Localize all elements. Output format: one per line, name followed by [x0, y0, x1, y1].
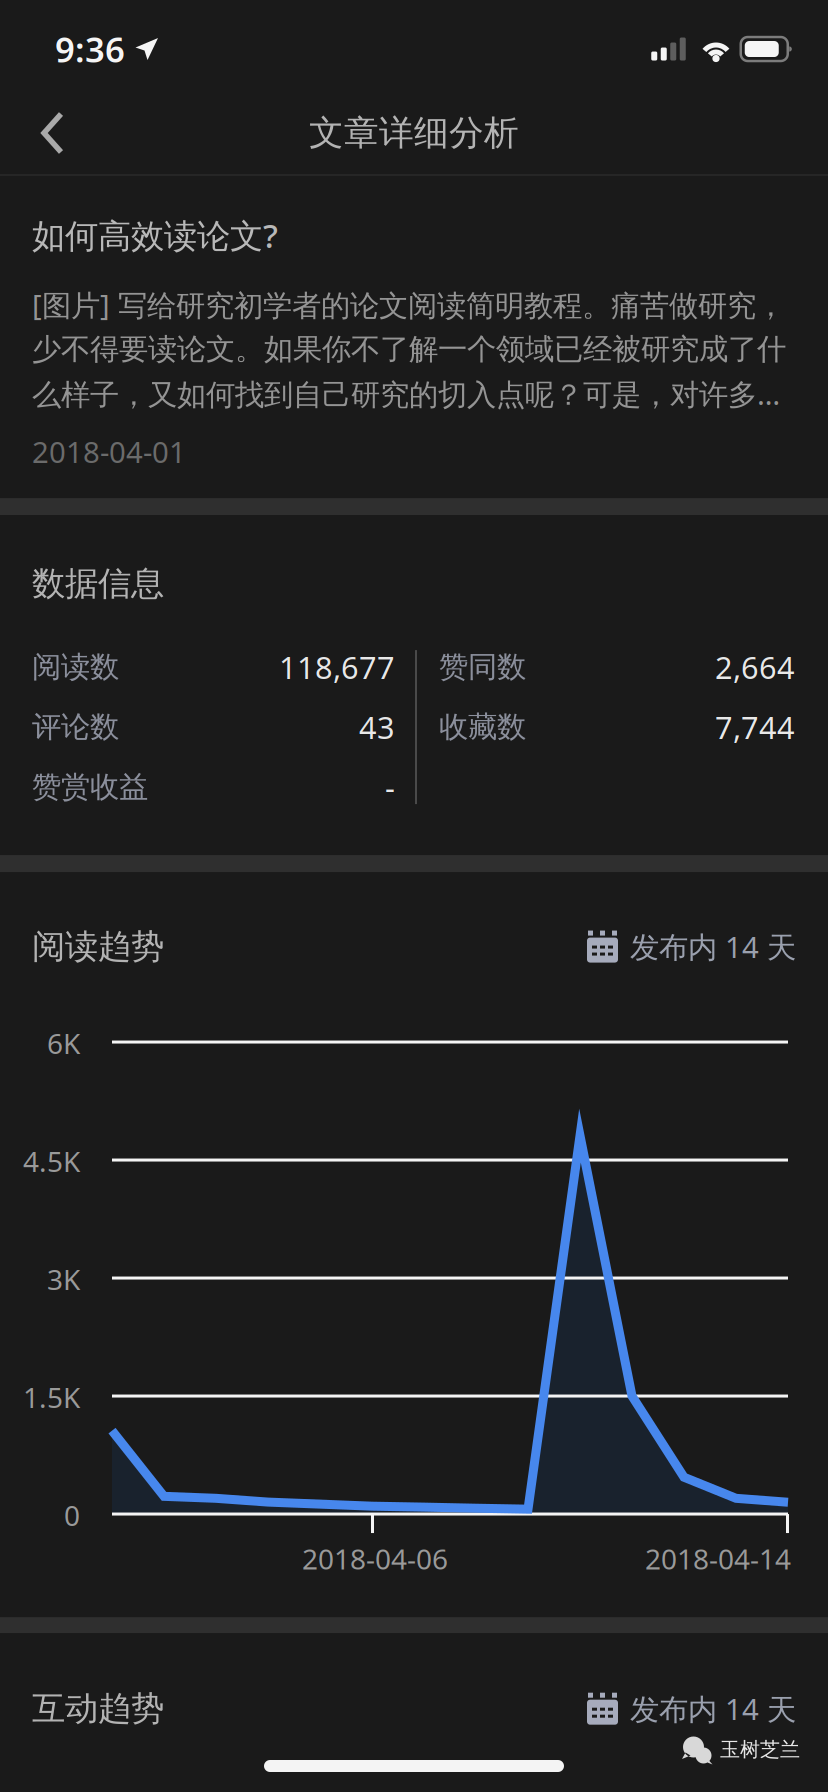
staticText: 赞同数	[439, 649, 526, 685]
staticText: 118,677	[279, 647, 395, 687]
staticText: 收藏数	[439, 709, 526, 745]
staticText: 6K	[47, 1024, 80, 1062]
staticText: 阅读趋势	[32, 926, 164, 967]
staticText: 7,744	[715, 707, 795, 747]
staticText: 9:36	[55, 26, 125, 72]
staticText: 么样子，又如何找到自己研究的切入点呢？可是，对许多…	[32, 374, 780, 413]
staticText: 互动趋势	[32, 1688, 164, 1729]
staticText: 玉树芝兰	[720, 1737, 800, 1762]
staticText: 2018-04-06	[302, 1540, 448, 1577]
staticText: 2018-04-01	[32, 432, 186, 471]
staticText: 2018-04-14	[645, 1540, 791, 1577]
staticText: 2,664	[715, 647, 795, 687]
staticText: 发布内 14 天	[630, 1689, 796, 1728]
staticText: 赞赏收益	[32, 769, 148, 805]
staticText: 3K	[47, 1260, 80, 1298]
button[interactable]: Back	[0, 88, 92, 174]
button[interactable]: 发布内 14 天	[587, 927, 796, 966]
staticText: 1.5K	[23, 1378, 80, 1416]
staticText: 少不得要读论文。如果你不了解一个领域已经被研究成了什	[32, 331, 786, 367]
staticText: 评论数	[32, 709, 119, 745]
staticText: 0	[64, 1496, 80, 1534]
staticText: [图片] 写给研究初学者的论文阅读简明教程。痛苦做研究，	[32, 285, 785, 324]
staticText: 阅读数	[32, 649, 119, 685]
staticText: 文章详细分析	[309, 112, 519, 154]
staticText: 如何高效读论文?	[32, 213, 278, 257]
staticText: 43	[359, 707, 395, 747]
staticText: 4.5K	[23, 1142, 80, 1180]
staticText: 数据信息	[32, 563, 164, 604]
staticText: -	[385, 767, 395, 807]
staticText: 发布内 14 天	[630, 927, 796, 966]
button[interactable]: 发布内 14 天	[587, 1689, 796, 1728]
